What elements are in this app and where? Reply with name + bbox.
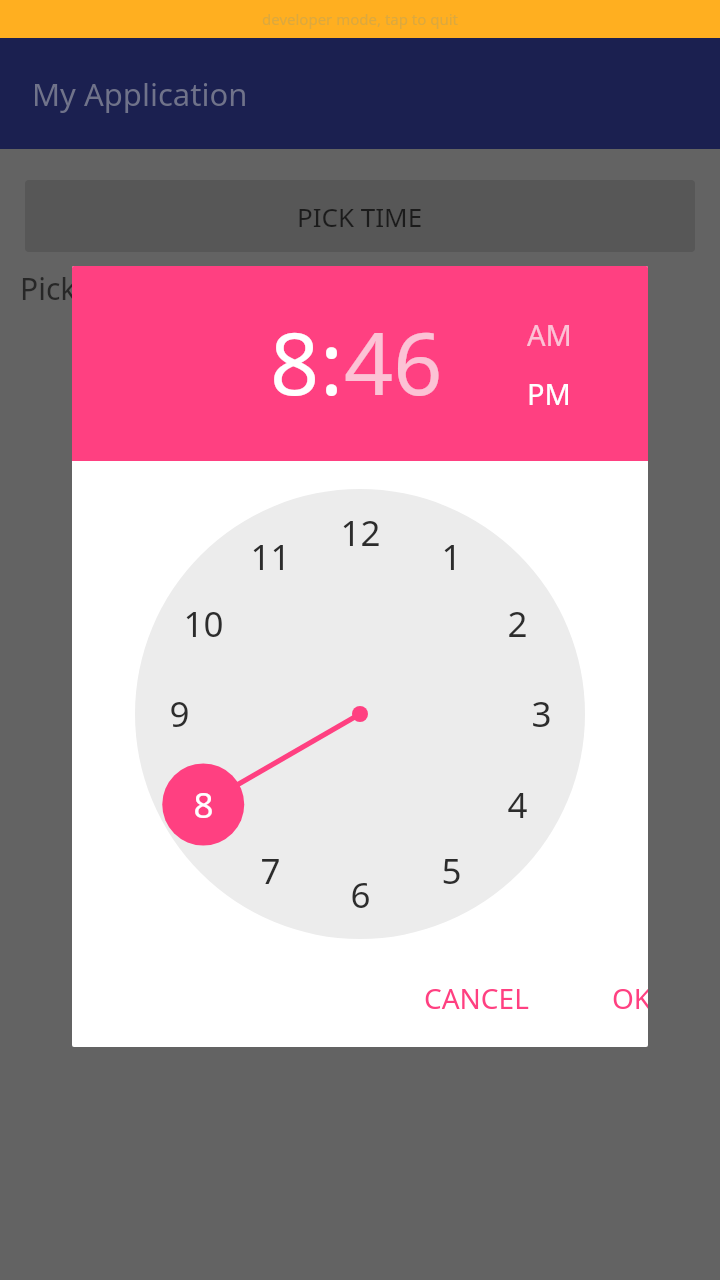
staticText: 5 xyxy=(441,847,462,895)
button[interactable]: 10 xyxy=(162,583,244,665)
staticText: developer mode, tap to quit xyxy=(262,9,459,29)
staticText: 8 xyxy=(270,303,320,420)
staticText: 46 xyxy=(344,303,443,420)
button[interactable]: PM xyxy=(527,374,571,413)
staticText: 6 xyxy=(350,871,371,919)
button[interactable]: 46 xyxy=(344,303,443,420)
staticText: 11 xyxy=(250,533,291,581)
staticText: 10 xyxy=(183,600,224,648)
staticText: 7 xyxy=(260,847,281,895)
button[interactable]: 7 xyxy=(229,830,311,912)
staticText: 3 xyxy=(531,690,552,738)
button[interactable]: OK xyxy=(600,967,648,1029)
button[interactable]: AM xyxy=(527,315,572,354)
button[interactable]: CANCEL xyxy=(412,967,541,1029)
button[interactable]: 3 xyxy=(500,673,582,755)
button[interactable]: 5 xyxy=(410,830,492,912)
button[interactable]: 6 xyxy=(319,854,401,936)
staticText: 4 xyxy=(507,781,528,829)
staticText: PICK TIME xyxy=(297,199,423,234)
button[interactable]: 11 xyxy=(229,516,311,598)
staticText: Pick xyxy=(20,268,77,309)
staticText: 2 xyxy=(507,600,528,648)
staticText: 9 xyxy=(169,690,190,738)
staticText: 1 xyxy=(441,533,462,581)
staticText: My Application xyxy=(32,73,248,115)
button[interactable]: 4 xyxy=(476,764,558,846)
button[interactable]: 2 xyxy=(476,583,558,665)
button[interactable]: 12 xyxy=(319,492,401,574)
button[interactable]: 8 xyxy=(162,764,244,846)
staticText: : xyxy=(320,303,344,420)
staticText: 12 xyxy=(340,509,381,557)
button[interactable]: 8 xyxy=(270,303,320,420)
button[interactable]: PICK TIME xyxy=(25,180,695,252)
staticText: 8 xyxy=(193,781,214,829)
staticText: AM xyxy=(527,315,572,354)
button[interactable]: 9 xyxy=(138,673,220,755)
staticText: CANCEL xyxy=(424,979,529,1017)
staticText: PM xyxy=(527,374,571,413)
staticText: OK xyxy=(612,979,648,1017)
other: Clock dial xyxy=(72,266,648,1047)
button[interactable]: 1 xyxy=(410,516,492,598)
